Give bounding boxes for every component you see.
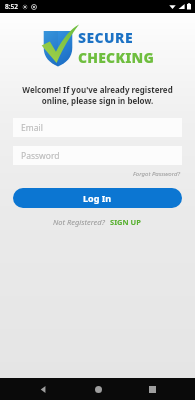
button[interactable]: Forgot Password? — [132, 168, 182, 180]
button[interactable]: SIGN UP — [109, 215, 142, 229]
staticText: Password — [21, 150, 60, 162]
button[interactable]: Email — [13, 118, 182, 137]
staticText: CHECKING — [78, 48, 154, 67]
button[interactable]: Recent apps — [141, 378, 163, 400]
button[interactable]: Home — [87, 378, 109, 400]
button[interactable]: Log In — [13, 188, 182, 208]
staticText: Email — [21, 122, 43, 134]
staticText: Log In — [83, 192, 112, 204]
staticText: Forgot Password? — [133, 170, 181, 178]
staticText: 8:52 — [5, 2, 18, 11]
staticText: Welcome! If you've already registered on… — [8, 84, 187, 106]
button[interactable]: Password — [13, 146, 182, 165]
staticText: SIGN UP — [110, 217, 141, 227]
staticText: SECURE — [78, 28, 134, 47]
staticText: Not Registered? — [53, 217, 105, 227]
button[interactable]: Back — [32, 378, 54, 400]
